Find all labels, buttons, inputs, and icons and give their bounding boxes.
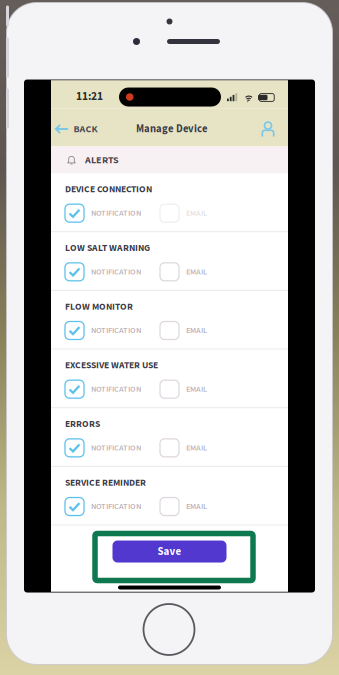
staticText: EMAIL (186, 442, 207, 454)
staticText: NOTIFICATION (91, 442, 141, 454)
button[interactable]: NOTIFICATION (65, 497, 141, 515)
button[interactable]: BACK (51, 115, 107, 139)
button[interactable]: Account (252, 115, 284, 140)
staticText: Manage Device (136, 121, 208, 137)
button[interactable]: EMAIL (160, 321, 207, 339)
staticText: ERRORS (65, 417, 100, 431)
staticText: DEVICE CONNECTION (65, 182, 152, 196)
button[interactable]: EMAIL (160, 497, 207, 515)
staticText: NOTIFICATION (91, 207, 141, 219)
staticText: FLOW MONITOR (65, 300, 133, 313)
staticText: EMAIL (186, 325, 207, 336)
button[interactable]: NOTIFICATION (65, 204, 141, 222)
staticText: LOW SALT WARNING (65, 241, 150, 255)
staticText: NOTIFICATION (91, 266, 141, 278)
staticText: EMAIL (186, 207, 207, 219)
staticText: EXCESSIVE WATER USE (65, 358, 158, 372)
button[interactable]: Save (112, 540, 226, 562)
staticText: NOTIFICATION (91, 501, 141, 512)
button[interactable]: NOTIFICATION (65, 380, 141, 398)
button[interactable]: EMAIL (160, 263, 207, 281)
staticText: 11:21 (76, 88, 103, 105)
staticText: BACK (73, 122, 97, 136)
button[interactable]: NOTIFICATION (65, 263, 141, 281)
staticText: ALERTS (85, 153, 119, 167)
staticText: NOTIFICATION (91, 325, 141, 336)
staticText: EMAIL (186, 501, 207, 512)
button[interactable]: EMAIL (160, 439, 207, 457)
button[interactable]: NOTIFICATION (65, 321, 141, 339)
button[interactable]: EMAIL (160, 204, 207, 222)
button[interactable]: NOTIFICATION (65, 439, 141, 457)
staticText: EMAIL (186, 383, 207, 395)
staticText: NOTIFICATION (91, 383, 141, 395)
staticText: SERVICE REMINDER (65, 476, 146, 490)
staticText: EMAIL (186, 266, 207, 278)
staticText: Save (157, 544, 181, 559)
button[interactable]: EMAIL (160, 380, 207, 398)
